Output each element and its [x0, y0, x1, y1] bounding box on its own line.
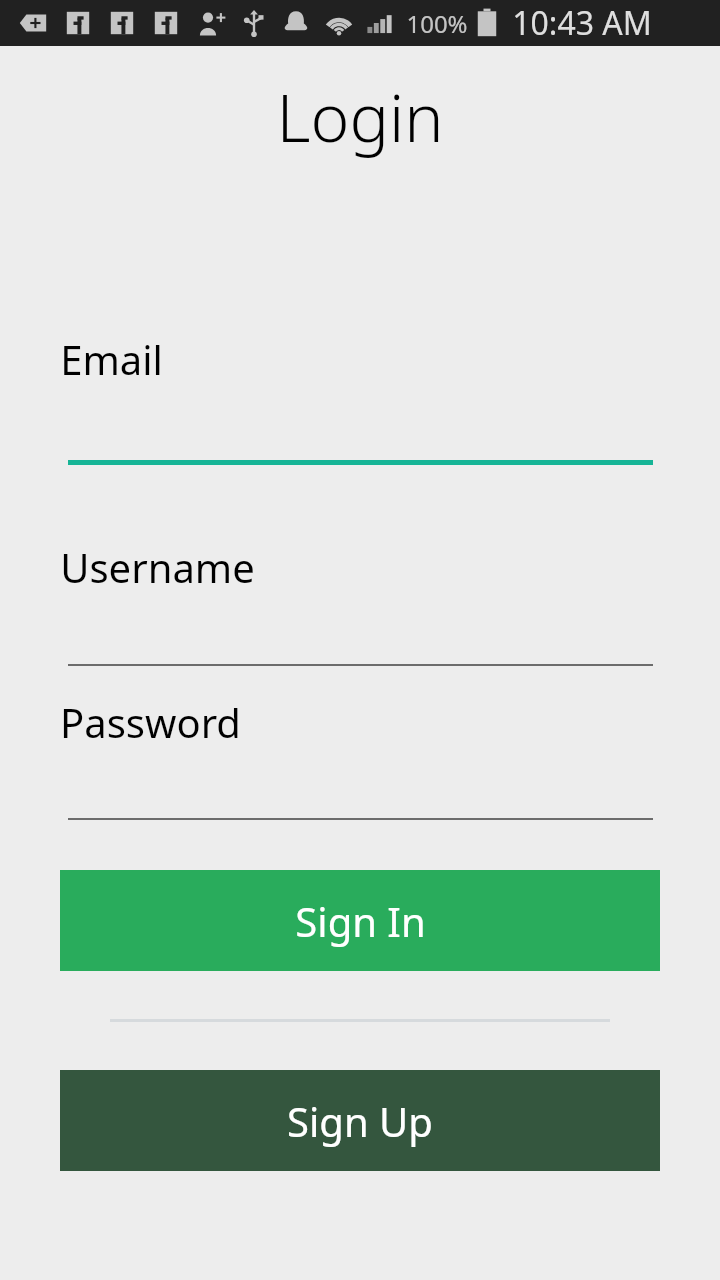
staticText: Sign Up [287, 1094, 433, 1148]
staticText: 100% [406, 7, 468, 40]
staticText: Username [60, 540, 255, 594]
button[interactable]: Sign Up [60, 1070, 660, 1171]
staticText: 10:43 AM [512, 1, 652, 45]
staticText: Password [60, 695, 241, 749]
staticText: Login [276, 71, 444, 161]
button[interactable]: Sign In [60, 870, 660, 971]
staticText: Sign In [295, 894, 426, 948]
staticText: Email [60, 332, 163, 386]
